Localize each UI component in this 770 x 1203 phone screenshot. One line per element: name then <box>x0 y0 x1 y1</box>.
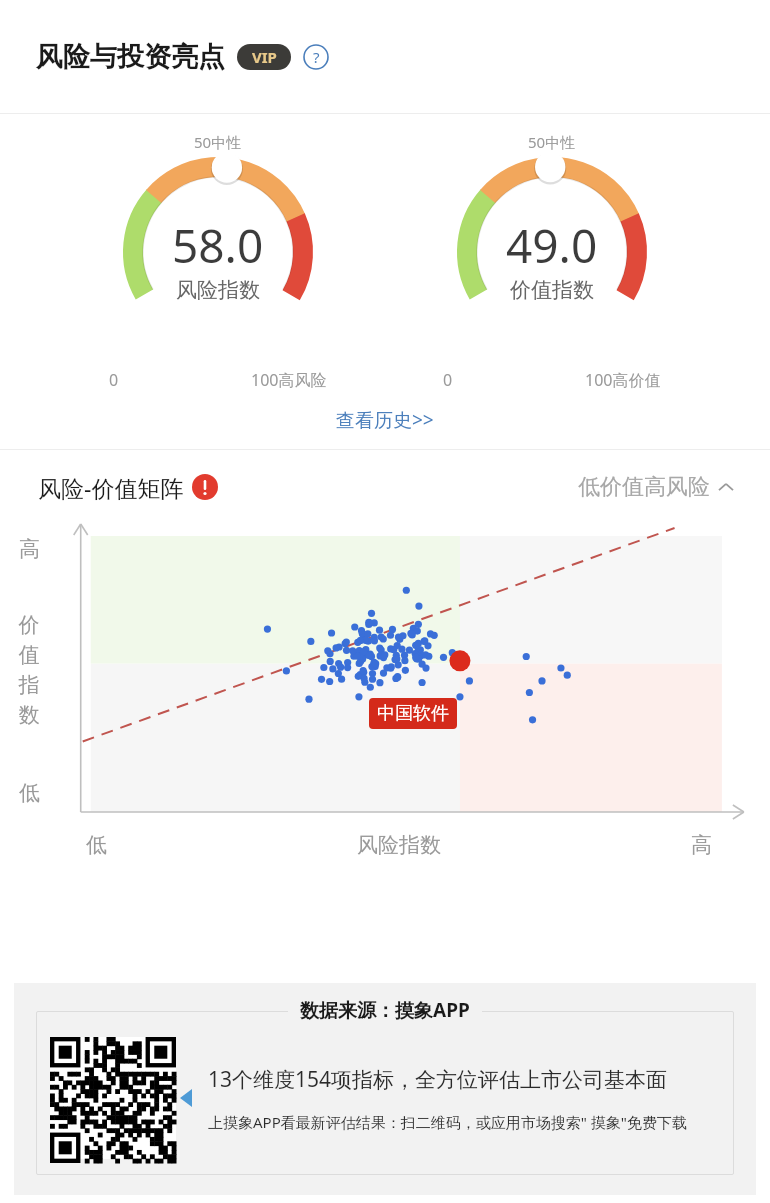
staticText: 低 <box>86 832 107 858</box>
button[interactable]: Help <box>303 44 329 70</box>
staticText: 高 <box>19 536 40 562</box>
staticText: 49.0 <box>506 214 598 277</box>
staticText: 查看历史>> <box>336 407 434 433</box>
staticText: 58.0 <box>172 214 264 277</box>
staticText: 低价值高风险 <box>578 473 710 501</box>
staticText: VIP <box>252 47 277 67</box>
staticText: 高 <box>691 832 712 858</box>
staticText: 13个维度154项指标，全方位评估上市公司基本面 <box>208 1065 668 1094</box>
staticText: 100高风险 <box>251 369 327 391</box>
staticText: 50中性 <box>194 132 242 152</box>
staticText: 价值指数 <box>16 612 42 729</box>
staticText: 100高价值 <box>585 369 661 391</box>
button[interactable]: VIP <box>237 44 291 70</box>
staticText: 风险指数 <box>357 832 441 858</box>
staticText: 风险指数 <box>176 277 260 303</box>
staticText: 0 <box>443 369 453 391</box>
button[interactable]: 低价值高风险 <box>574 470 738 504</box>
staticText: 中国软件 <box>377 702 449 725</box>
staticText: ? <box>313 47 320 67</box>
button[interactable]: 查看历史>> <box>326 403 444 437</box>
staticText: 低 <box>19 780 40 806</box>
staticText: 上摸象APP看最新评估结果：扫二维码，或应用市场搜索" 摸象"免费下载 <box>208 1112 687 1132</box>
button[interactable]: 中国软件 <box>369 698 457 729</box>
staticText: 数据来源：摸象APP <box>300 997 470 1023</box>
staticText: 价值指数 <box>510 277 594 303</box>
staticText: 50中性 <box>528 132 576 152</box>
staticText: 0 <box>109 369 119 391</box>
staticText: 风险与投资亮点 <box>36 40 225 74</box>
staticText: 风险-价值矩阵 <box>38 472 184 503</box>
